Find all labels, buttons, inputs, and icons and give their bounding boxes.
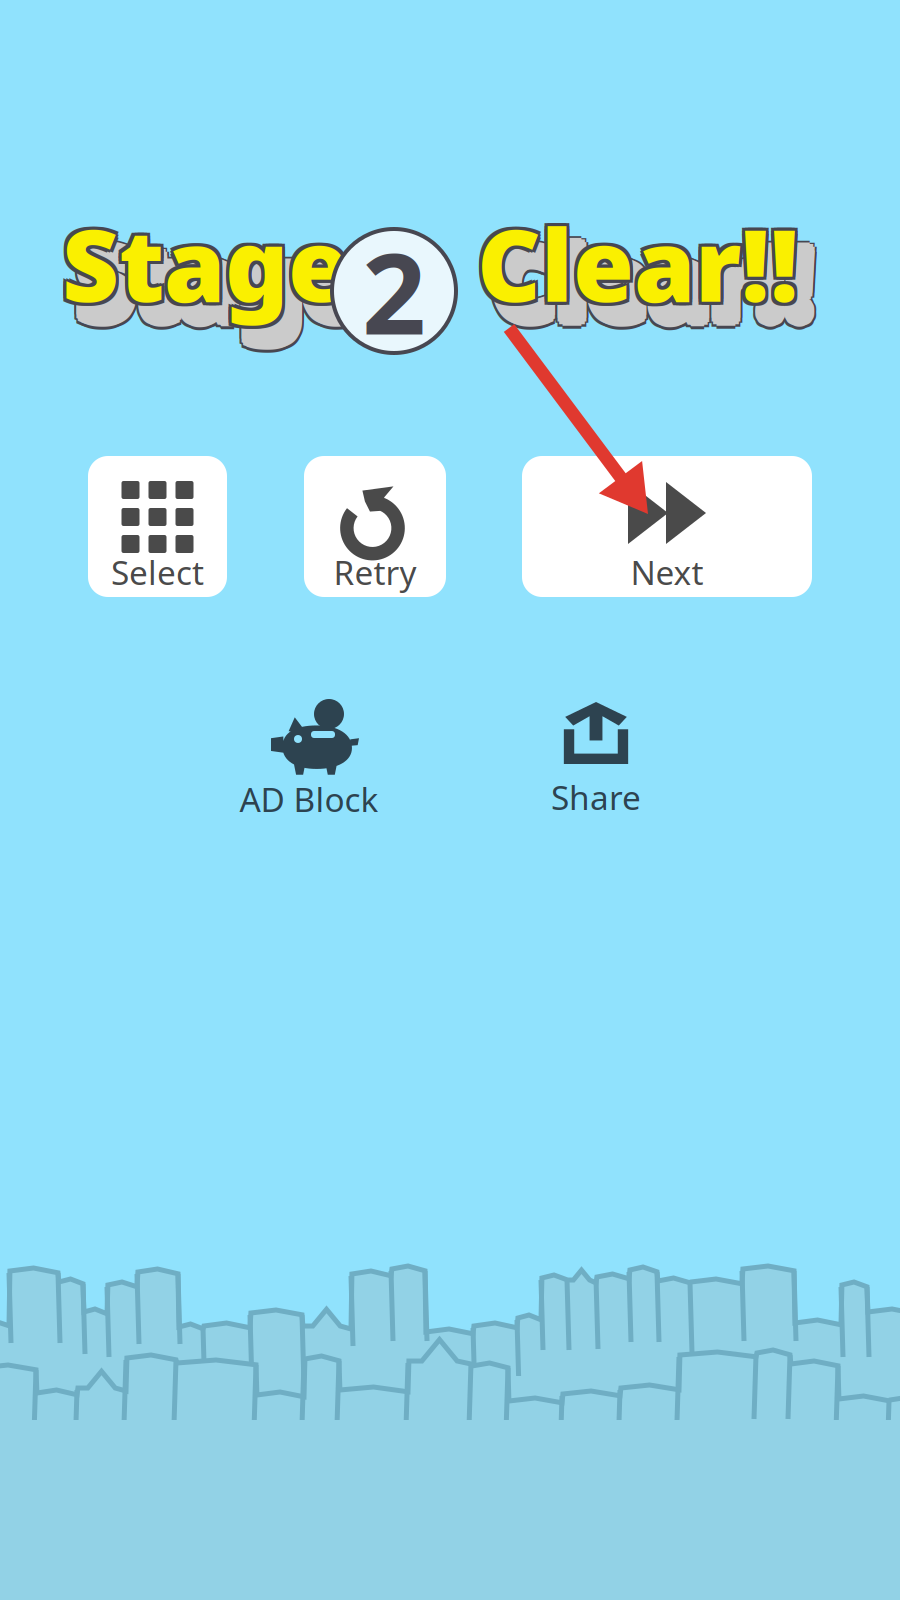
staticText: Stage (77, 225, 364, 356)
staticText: Clear!! (496, 211, 818, 342)
staticText: Stage (72, 214, 359, 345)
staticText: Stage (77, 208, 364, 339)
staticText: Clear!! (492, 208, 814, 339)
staticText: Stage (82, 223, 369, 354)
staticText: Clear!! (497, 223, 819, 354)
staticText: Clear!! (487, 212, 809, 343)
staticText: Stage (77, 210, 364, 341)
staticText: Stage (62, 201, 349, 332)
staticText: Stage (65, 201, 352, 332)
staticText: Clear!! (497, 218, 819, 349)
staticText: Clear!! (485, 214, 807, 345)
staticText: Stage (81, 220, 368, 351)
staticText: Clear!! (474, 195, 796, 326)
staticText: Stage (82, 214, 369, 345)
staticText: Stage (72, 210, 359, 341)
staticText: Stage (72, 223, 359, 354)
staticText: Clear!! (496, 220, 818, 351)
staticText: Stage (73, 213, 360, 344)
staticText: Clear!! (497, 214, 819, 345)
staticText: Stage (62, 195, 349, 326)
staticText: Stage (70, 219, 357, 350)
button[interactable]: Share (531, 697, 661, 821)
button[interactable]: Retry (304, 456, 446, 597)
staticText: Stage (70, 214, 357, 345)
staticText: Clear!! (474, 198, 796, 329)
staticText: Clear!! (499, 214, 821, 345)
staticText: Select (111, 550, 204, 594)
staticText: Stage (72, 218, 359, 349)
staticText: Clear!! (477, 198, 799, 329)
staticText: AD Block (239, 777, 378, 821)
staticText: Clear!! (487, 210, 809, 341)
staticText: Clear!! (480, 195, 802, 326)
staticText: Clear!! (492, 222, 814, 353)
staticText: Clear!! (492, 214, 814, 345)
staticText: Clear!! (492, 225, 814, 356)
staticText: Clear!! (487, 223, 809, 354)
staticText: Stage (82, 218, 369, 349)
staticText: Clear!! (485, 219, 807, 350)
button[interactable]: Next (522, 456, 812, 597)
staticText: Stage (82, 210, 369, 341)
staticText: Stage (59, 201, 346, 332)
staticText: Clear!! (487, 214, 809, 345)
staticText: Stage (84, 214, 371, 345)
button[interactable]: Select (88, 456, 227, 597)
staticText: Clear!! (480, 201, 802, 332)
staticText: Clear!! (477, 195, 799, 326)
staticText: Stage (59, 198, 346, 329)
staticText: Stage (73, 211, 360, 342)
staticText: Share (551, 775, 641, 819)
staticText: Clear!! (497, 210, 819, 341)
staticText: Clear!! (488, 213, 810, 344)
staticText: Stage (84, 219, 371, 350)
staticText: Clear!! (488, 220, 810, 351)
staticText: Stage (77, 214, 364, 345)
staticText: Stage (65, 198, 352, 329)
staticText: Stage (59, 195, 346, 326)
staticText: Retry (333, 550, 416, 594)
staticText: Clear!! (480, 198, 802, 329)
staticText: Stage (72, 212, 359, 343)
staticText: Next (630, 550, 703, 594)
staticText: Stage (73, 220, 360, 351)
staticText: Clear!! (492, 210, 814, 341)
staticText: Stage (77, 222, 364, 353)
staticText: Stage (81, 211, 368, 342)
staticText: Clear!! (488, 211, 810, 342)
staticText: Clear!! (499, 219, 821, 350)
button[interactable]: AD Block (209, 689, 409, 813)
staticText: Clear!! (487, 218, 809, 349)
staticText: Clear!! (474, 201, 796, 332)
staticText: 2 (362, 217, 426, 365)
staticText: Stage (65, 195, 352, 326)
staticText: Clear!! (477, 201, 799, 332)
staticText: Stage (62, 198, 349, 329)
